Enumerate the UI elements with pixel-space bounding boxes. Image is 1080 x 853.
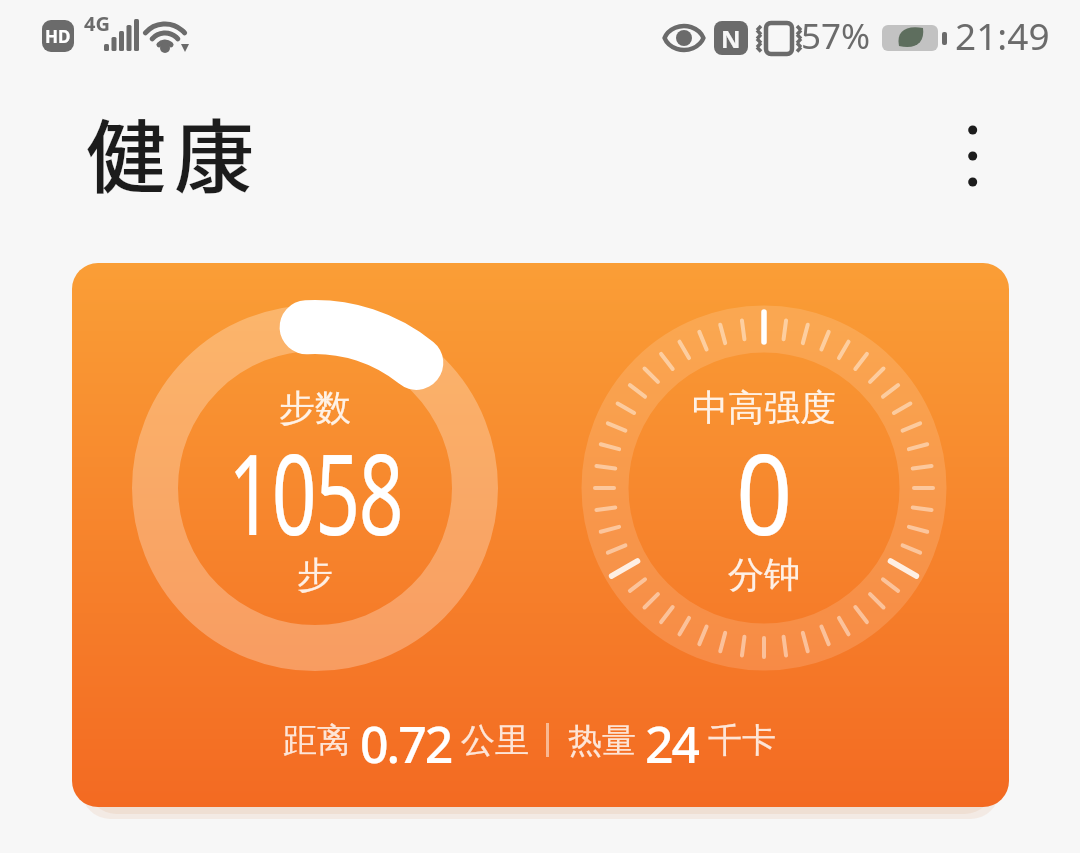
staticText: 步 [297,552,333,597]
staticText: 分钟 [728,552,800,597]
staticText: 0 [736,415,793,568]
staticText: 距离 [283,719,351,762]
staticText: 公里 [461,719,529,762]
staticText: 0.72 [360,710,452,770]
staticText: 21:49 [955,10,1050,60]
staticText: 1058 [228,415,403,568]
button[interactable] [948,112,998,200]
staticText: 步数 [279,385,351,430]
staticText: 千卡 [708,719,776,762]
staticText: HD [45,25,71,48]
staticText: 中高强度 [692,385,836,430]
staticText: 热量 [568,719,636,762]
staticText: 57% [801,12,871,60]
button[interactable]: 步数 [72,263,1009,807]
staticText: N [721,22,741,55]
staticText: 健康 [86,93,262,209]
staticText: 24 [645,710,699,770]
staticText: 4G [84,10,110,37]
